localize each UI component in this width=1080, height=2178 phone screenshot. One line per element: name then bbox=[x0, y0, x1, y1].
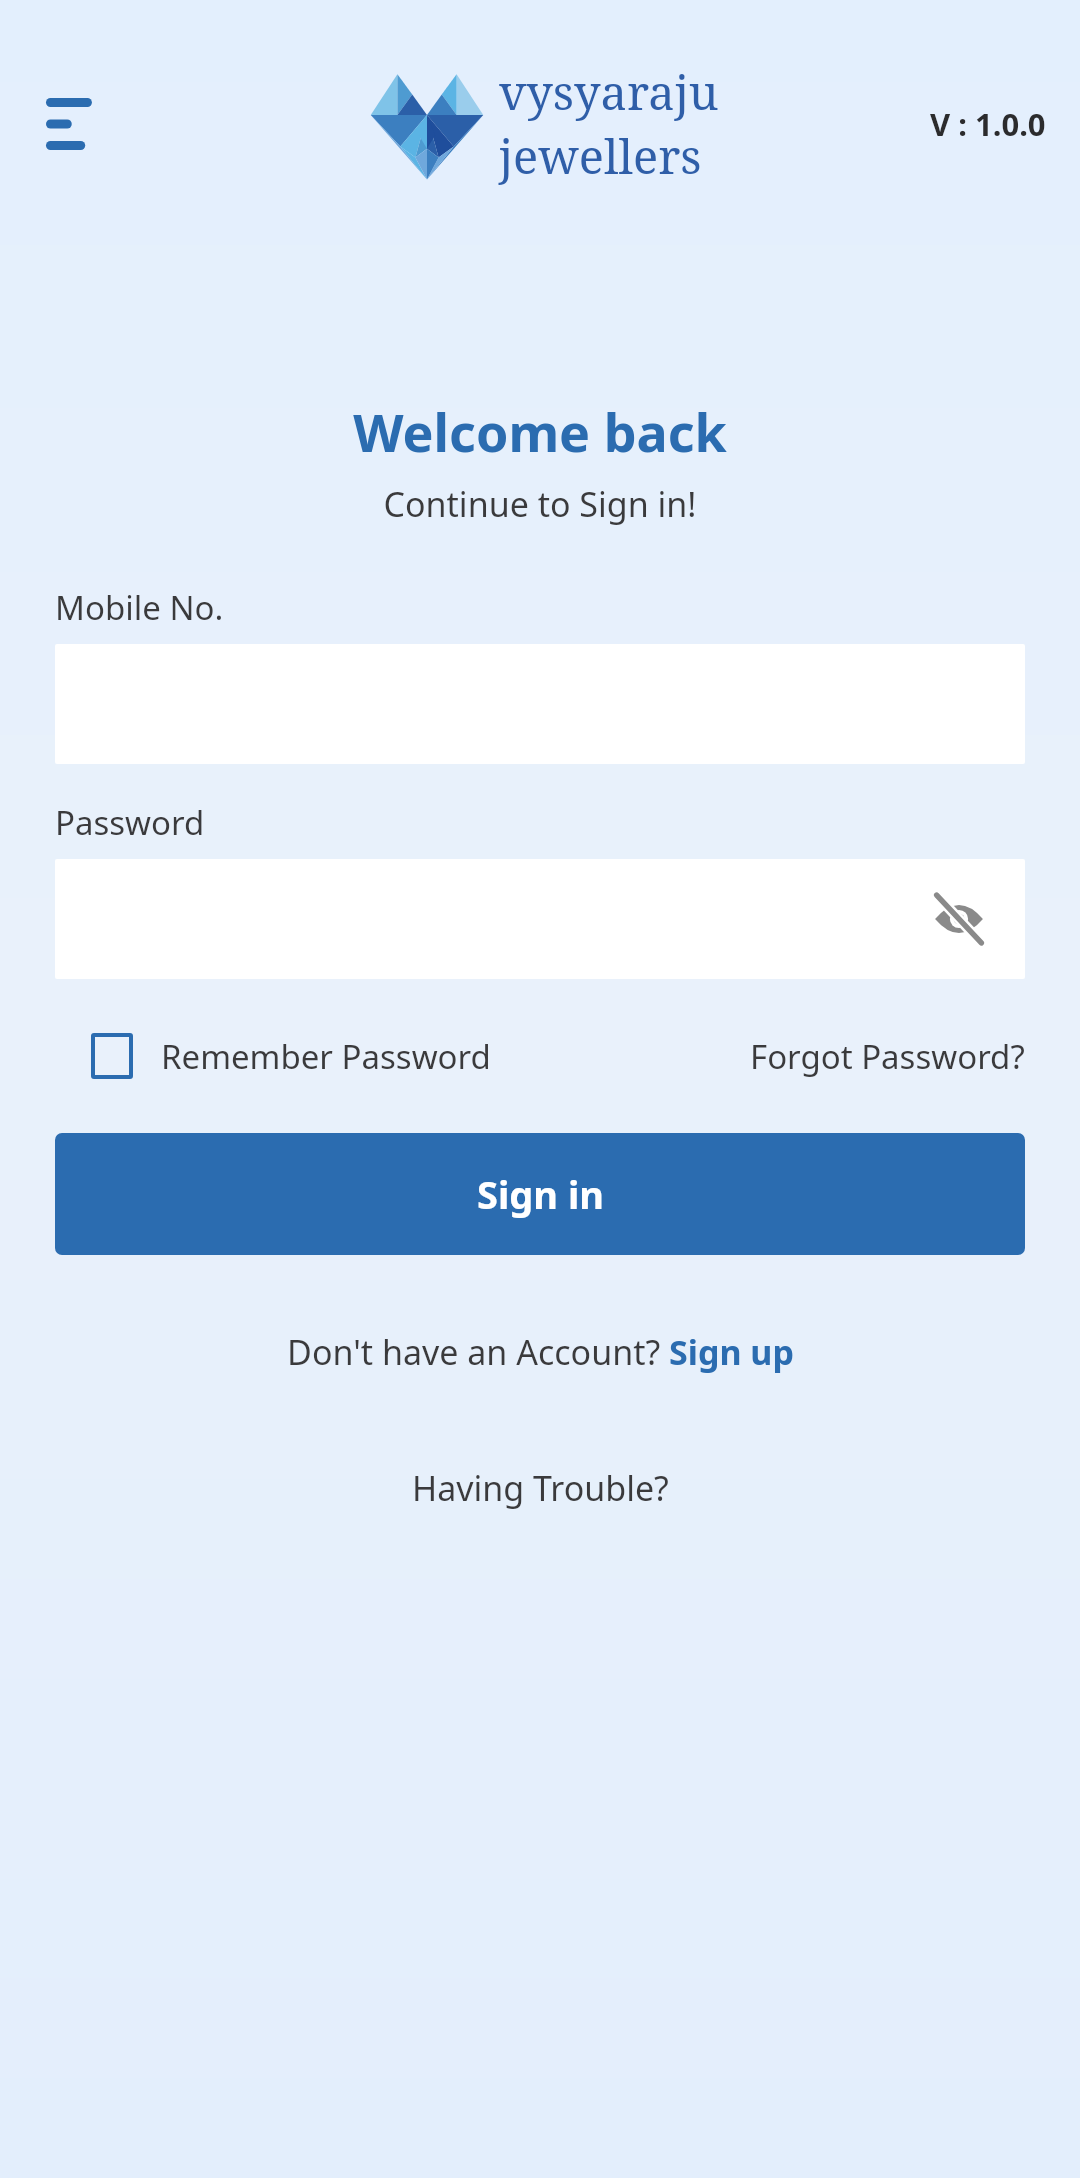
staticText: Password bbox=[55, 800, 205, 845]
button[interactable]: Having Trouble? bbox=[400, 1459, 681, 1517]
button[interactable]: Menu bbox=[30, 82, 114, 166]
staticText: Forgot Password? bbox=[750, 1034, 1025, 1079]
staticText: Having Trouble? bbox=[412, 1465, 669, 1511]
button[interactable]: Don't have an Account? Sign up bbox=[275, 1323, 806, 1381]
staticText: vysyaraju bbox=[499, 60, 719, 124]
staticText: Welcome back bbox=[0, 396, 1080, 467]
staticText: V : 1.0.0 bbox=[930, 103, 1046, 145]
staticText: Sign in bbox=[477, 1168, 604, 1220]
staticText: Don't have an Account? Sign up bbox=[287, 1329, 794, 1375]
staticText: jewellers bbox=[499, 124, 702, 188]
staticText: Remember Password bbox=[161, 1034, 491, 1079]
button[interactable]: V : 1.0.0 bbox=[930, 103, 1046, 145]
staticText: Mobile No. bbox=[55, 585, 224, 630]
staticText: Continue to Sign in! bbox=[0, 481, 1080, 527]
button[interactable]: Sign in bbox=[55, 1133, 1025, 1255]
button[interactable]: Show password bbox=[55, 859, 1025, 979]
button[interactable]: Remember Password bbox=[55, 1027, 491, 1085]
button[interactable]: Forgot Password? bbox=[750, 1028, 1025, 1085]
button[interactable]: Show password bbox=[923, 883, 995, 955]
